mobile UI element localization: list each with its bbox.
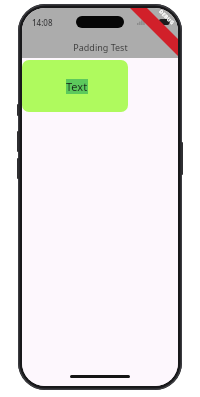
staticText: DEBUG — [157, 8, 176, 27]
staticText: Padding Test — [73, 41, 128, 53]
button[interactable]: Text — [22, 60, 128, 112]
button[interactable]: Padding Test — [22, 36, 178, 58]
staticText: 14:08 — [32, 17, 53, 28]
staticText: Text — [66, 79, 88, 94]
other: Debug build banner — [22, 8, 178, 386]
